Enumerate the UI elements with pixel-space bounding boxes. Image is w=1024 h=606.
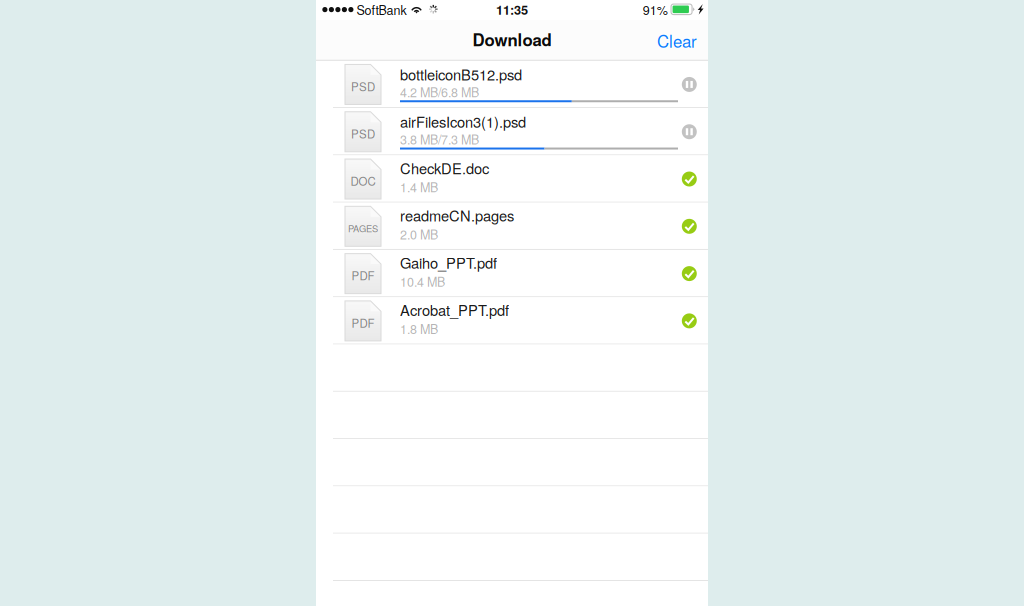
staticText: Acrobat_PPT.pdf (400, 299, 509, 320)
staticText: 11:35 (496, 0, 528, 19)
staticText: PAGES (348, 221, 378, 235)
staticText: 4.2 MB/6.8 MB (400, 83, 479, 101)
button[interactable]: DOC (316, 155, 708, 203)
button[interactable]: Clear (649, 17, 705, 63)
staticText: 1.8 MB (400, 320, 438, 338)
staticText: readmeCN.pages (400, 205, 514, 226)
staticText: 10.4 MB (400, 272, 445, 290)
button[interactable]: PDF (316, 250, 708, 297)
staticText: PDF (351, 314, 374, 331)
staticText: Gaiho_PPT.pdf (400, 252, 497, 273)
button[interactable]: PAGES (316, 203, 708, 250)
staticText: Download (472, 27, 551, 52)
staticText: airFilesIcon3(1).psd (400, 111, 526, 132)
staticText: SoftBank (357, 0, 407, 18)
staticText: 2.0 MB (400, 225, 438, 243)
staticText: CheckDE.doc (400, 157, 489, 178)
staticText: bottleiconB512.psd (400, 63, 522, 84)
staticText: Clear (657, 28, 697, 52)
staticText: 3.8 MB/7.3 MB (400, 130, 479, 148)
button[interactable]: PDF (316, 297, 708, 344)
button[interactable]: PSD (316, 108, 708, 155)
staticText: 91% (643, 0, 668, 18)
staticText: DOC (350, 173, 375, 189)
staticText: PDF (351, 267, 374, 284)
button[interactable]: PSD (316, 61, 708, 108)
staticText: PSD (351, 125, 375, 142)
staticText: 1.4 MB (400, 178, 438, 196)
staticText: PSD (351, 78, 375, 94)
